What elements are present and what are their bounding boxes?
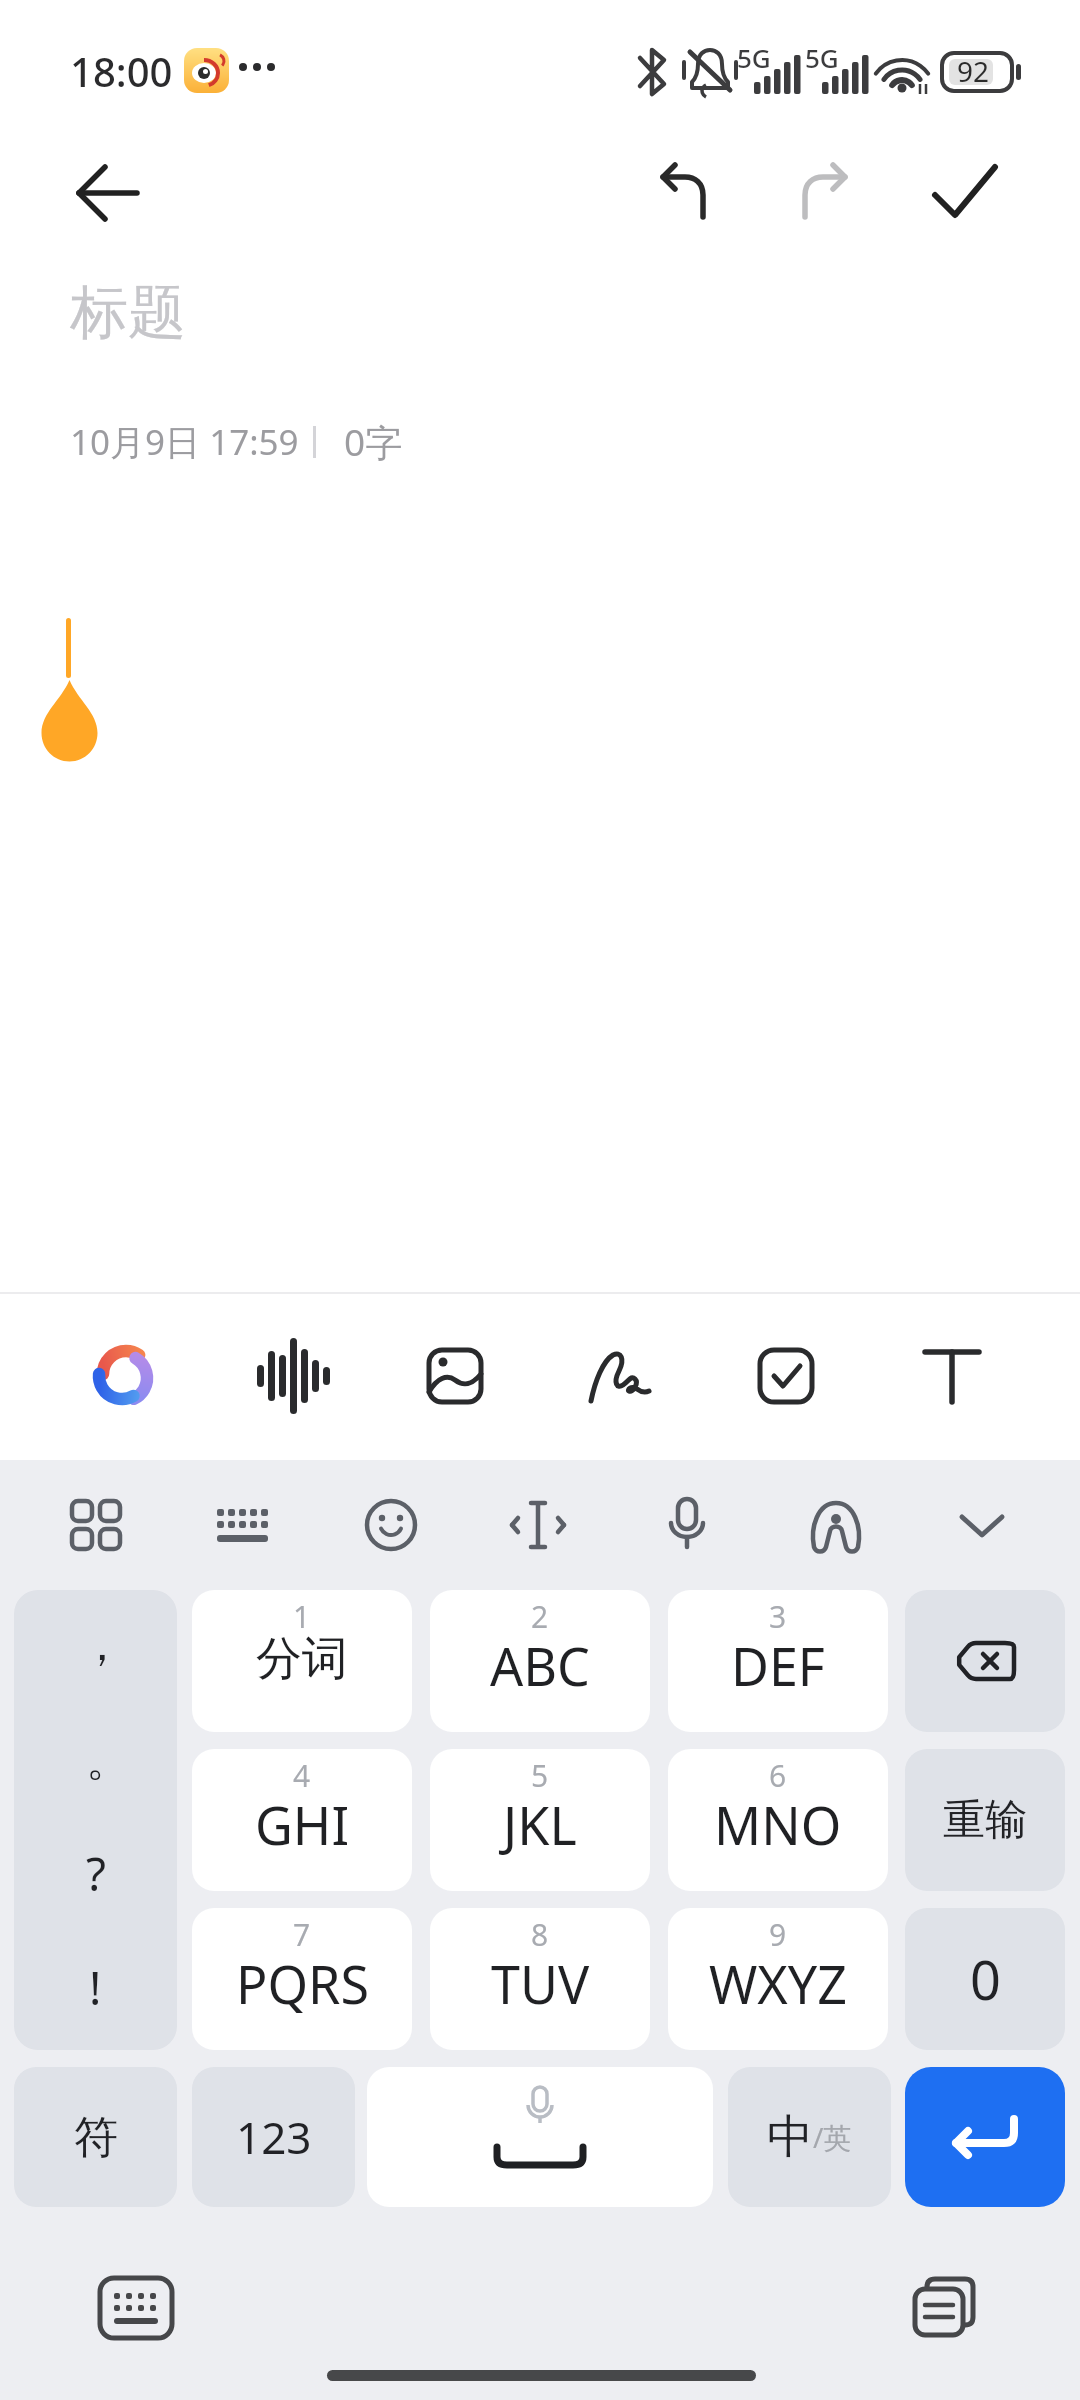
- staticText: /英: [813, 2118, 852, 2156]
- button[interactable]: 0: [905, 1908, 1065, 2050]
- button[interactable]: 7: [192, 1908, 412, 2050]
- staticText: MNO: [714, 1789, 842, 1860]
- staticText: 1: [293, 1596, 311, 1637]
- button[interactable]: [64, 148, 154, 238]
- button[interactable]: [188, 1470, 298, 1580]
- button[interactable]: 重输: [905, 1749, 1065, 1891]
- staticText: 。: [86, 1733, 130, 1788]
- button[interactable]: 5: [430, 1749, 650, 1891]
- button[interactable]: 8: [430, 1908, 650, 2050]
- staticText: ?: [86, 1842, 106, 1905]
- staticText: GHI: [255, 1789, 350, 1860]
- staticText: 5G: [737, 40, 771, 75]
- button[interactable]: [920, 148, 1010, 238]
- staticText: 0: [970, 1942, 1001, 2016]
- staticText: !: [89, 1956, 102, 2019]
- button[interactable]: [781, 1470, 891, 1580]
- button[interactable]: 中: [728, 2067, 891, 2207]
- button[interactable]: [41, 1470, 151, 1580]
- staticText: 4: [293, 1755, 311, 1796]
- button[interactable]: 符: [14, 2067, 177, 2207]
- button[interactable]: 1: [192, 1590, 412, 1732]
- staticText: 8: [531, 1914, 549, 1955]
- button[interactable]: [403, 1324, 507, 1428]
- staticText: 10月9日 17:59: [70, 418, 299, 466]
- staticText: 123: [236, 2107, 312, 2167]
- staticText: 18:00: [70, 44, 173, 98]
- button[interactable]: [73, 1324, 177, 1428]
- button[interactable]: [778, 148, 868, 238]
- button[interactable]: [734, 1324, 838, 1428]
- button[interactable]: [367, 2067, 713, 2207]
- staticText: 7: [293, 1914, 311, 1955]
- button[interactable]: [640, 148, 730, 238]
- button[interactable]: 4: [192, 1749, 412, 1891]
- staticText: 9: [769, 1914, 787, 1955]
- staticText: 2: [531, 1596, 549, 1637]
- staticText: PQRS: [236, 1948, 369, 2019]
- button[interactable]: [336, 1470, 446, 1580]
- button[interactable]: [483, 1470, 593, 1580]
- staticText: JKL: [503, 1789, 577, 1860]
- button[interactable]: 3: [668, 1590, 888, 1732]
- button[interactable]: [905, 1590, 1065, 1732]
- button[interactable]: [86, 2263, 186, 2353]
- staticText: 92: [957, 52, 990, 90]
- staticText: 6: [769, 1755, 787, 1796]
- staticText: ，: [80, 1618, 124, 1673]
- button[interactable]: ，: [14, 1590, 177, 2050]
- staticText: 5G: [805, 40, 839, 75]
- button[interactable]: [927, 1470, 1037, 1580]
- button[interactable]: [905, 2067, 1065, 2207]
- staticText: 符: [74, 2110, 118, 2165]
- staticText: WXYZ: [709, 1948, 848, 2019]
- button[interactable]: [632, 1470, 742, 1580]
- staticText: 重输: [943, 1794, 1027, 1847]
- button[interactable]: 123: [192, 2067, 355, 2207]
- button[interactable]: [895, 2263, 995, 2353]
- staticText: 中: [767, 2108, 813, 2166]
- button[interactable]: [900, 1324, 1004, 1428]
- staticText: DEF: [731, 1630, 825, 1701]
- button[interactable]: 2: [430, 1590, 650, 1732]
- staticText: 3: [769, 1596, 787, 1637]
- staticText: ABC: [490, 1630, 590, 1701]
- staticText: 标题: [70, 276, 186, 349]
- staticText: 0字: [344, 416, 403, 467]
- button[interactable]: 9: [668, 1908, 888, 2050]
- staticText: 5: [531, 1755, 549, 1796]
- button[interactable]: [238, 1324, 342, 1428]
- staticText: 分词: [256, 1630, 348, 1688]
- button[interactable]: [568, 1324, 672, 1428]
- staticText: TUV: [491, 1948, 590, 2019]
- button[interactable]: 6: [668, 1749, 888, 1891]
